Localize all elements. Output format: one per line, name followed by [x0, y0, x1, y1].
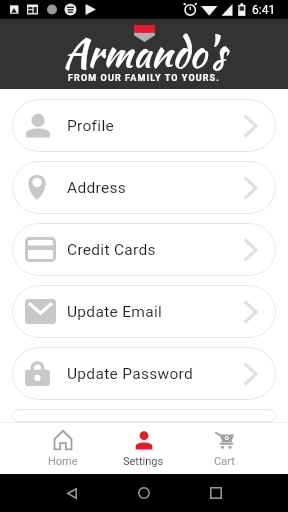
button[interactable]: Credit Cards: [12, 223, 276, 276]
button[interactable]: Update Password: [12, 347, 276, 400]
button[interactable]: [12, 409, 276, 422]
button[interactable]: Back: [36, 474, 108, 512]
button[interactable]: Address: [12, 161, 276, 214]
staticText: Settings: [123, 455, 164, 468]
button[interactable]: Recent apps: [180, 474, 252, 512]
button[interactable]: Profile: [12, 99, 276, 152]
staticText: Address: [67, 179, 127, 197]
button[interactable]: Update Email: [12, 285, 276, 338]
staticText: Armando's: [63, 25, 226, 82]
button[interactable]: Settings: [103, 423, 184, 474]
staticText: Credit Cards: [67, 241, 156, 259]
staticText: Profile: [67, 117, 114, 135]
button[interactable]: Cart: [184, 423, 265, 474]
staticText: Update Email: [67, 303, 163, 321]
staticText: Home: [48, 455, 78, 468]
button[interactable]: Home: [108, 474, 180, 512]
button[interactable]: Home: [23, 423, 103, 474]
staticText: 6:41: [252, 3, 276, 17]
staticText: Cart: [214, 455, 235, 468]
staticText: Update Password: [67, 365, 194, 383]
staticText: FROM OUR FAMILY TO YOURS.: [68, 73, 220, 84]
